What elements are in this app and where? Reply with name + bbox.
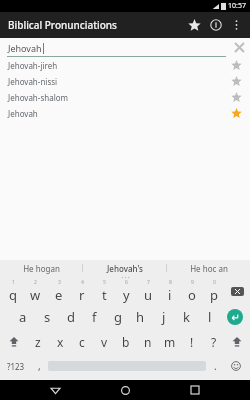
button[interactable]: Toggle favorite: [226, 73, 246, 89]
button[interactable]: ,: [30, 354, 48, 378]
button[interactable]: 1: [1, 279, 24, 304]
button[interactable]: !: [181, 329, 203, 354]
staticText: f: [92, 308, 97, 326]
staticText: e: [55, 286, 63, 304]
button[interactable]: j: [152, 304, 175, 329]
staticText: i: [168, 286, 172, 304]
button[interactable]: 6: [115, 279, 137, 304]
button[interactable]: n: [137, 329, 159, 354]
button[interactable]: Jehovah-jireh: [0, 57, 250, 73]
button[interactable]: h: [129, 304, 152, 329]
staticText: j: [162, 308, 166, 326]
button[interactable]: Back: [40, 380, 70, 400]
staticText: .: [214, 359, 217, 373]
staticText: Biblical Pronunciations: [8, 18, 117, 32]
staticText: n: [144, 334, 152, 350]
button[interactable]: 5: [93, 279, 115, 304]
staticText: g: [114, 308, 122, 326]
staticText: c: [79, 334, 85, 350]
staticText: 1: [12, 279, 15, 286]
staticText: Jehovah-nissi: [8, 76, 226, 87]
staticText: ?: [211, 334, 217, 350]
staticText: m: [164, 334, 176, 350]
staticText: y: [123, 286, 130, 304]
button[interactable]: x: [49, 329, 71, 354]
button[interactable]: d: [59, 304, 83, 329]
button[interactable]: Jehovah: [0, 105, 250, 121]
button[interactable]: c: [71, 329, 93, 354]
button[interactable]: g: [106, 304, 129, 329]
staticText: k: [183, 308, 190, 326]
staticText: l: [208, 308, 212, 326]
button[interactable]: Backspace: [225, 279, 249, 304]
button[interactable]: 7: [137, 279, 159, 304]
button[interactable]: l: [198, 304, 221, 329]
staticText: 6: [125, 279, 128, 286]
button[interactable]: 3: [47, 279, 70, 304]
staticText: !: [190, 334, 194, 350]
staticText: 0: [213, 279, 216, 286]
button[interactable]: m: [159, 329, 181, 354]
staticText: x: [57, 334, 64, 350]
staticText: Jehovah-jireh: [8, 60, 226, 71]
staticText: o: [188, 286, 196, 304]
staticText: u: [144, 286, 153, 304]
staticText: 8: [169, 279, 172, 286]
button[interactable]: He hogan: [0, 260, 82, 276]
staticText: ?123: [7, 361, 25, 372]
button[interactable]: Jehovah-nissi: [0, 73, 250, 89]
staticText: b: [122, 334, 130, 350]
staticText: 10:57: [228, 1, 246, 11]
staticText: 4: [81, 279, 84, 286]
button[interactable]: b: [115, 329, 137, 354]
staticText: Jehovah-shalom: [8, 92, 226, 103]
button[interactable]: Shift: [225, 329, 249, 354]
button[interactable]: a: [11, 304, 35, 329]
button[interactable]: .: [206, 354, 224, 378]
button[interactable]: Shift: [1, 329, 26, 354]
button[interactable]: Toggle favorite: [226, 89, 246, 105]
staticText: Jehovah: [8, 108, 226, 119]
button[interactable]: z: [26, 329, 49, 354]
staticText: s: [44, 308, 51, 326]
button[interactable]: k: [175, 304, 198, 329]
staticText: Jehovah's: [107, 263, 143, 274]
button[interactable]: Toggle favorite: [226, 105, 246, 121]
button[interactable]: 9: [181, 279, 203, 304]
button[interactable]: Jehovah's: [83, 260, 166, 276]
button[interactable]: He hoc an: [167, 260, 250, 276]
button[interactable]: 2: [24, 279, 47, 304]
staticText: q: [9, 286, 17, 304]
button[interactable]: ?123: [2, 354, 30, 378]
staticText: 7: [147, 279, 150, 286]
button[interactable]: Enter: [221, 304, 249, 329]
staticText: 3: [58, 279, 61, 286]
staticText: 9: [191, 279, 194, 286]
staticText: ,: [38, 359, 41, 373]
button[interactable]: v: [93, 329, 115, 354]
staticText: p: [210, 286, 218, 304]
staticText: w: [30, 286, 41, 304]
staticText: Jehovah: [8, 42, 42, 54]
button[interactable]: 8: [159, 279, 181, 304]
button[interactable]: 0: [203, 279, 225, 304]
staticText: He hoc an: [190, 263, 228, 274]
button[interactable]: s: [35, 304, 59, 329]
staticText: a: [19, 308, 27, 326]
button[interactable]: f: [83, 304, 106, 329]
button[interactable]: 4: [70, 279, 93, 304]
button[interactable]: Emoji: [224, 354, 248, 378]
button[interactable]: Toggle favorite: [226, 57, 246, 73]
button[interactable]: Info: [205, 14, 227, 36]
button[interactable]: Recents: [180, 380, 210, 400]
button[interactable]: Home: [110, 380, 140, 400]
button[interactable]: Favorites: [183, 14, 205, 36]
button[interactable]: More options: [227, 16, 245, 34]
staticText: h: [136, 308, 145, 326]
staticText: d: [67, 308, 75, 326]
staticText: v: [101, 334, 108, 350]
button[interactable]: Clear search: [228, 38, 250, 57]
button[interactable]: ?: [203, 329, 225, 354]
button[interactable]: Jehovah-shalom: [0, 89, 250, 105]
